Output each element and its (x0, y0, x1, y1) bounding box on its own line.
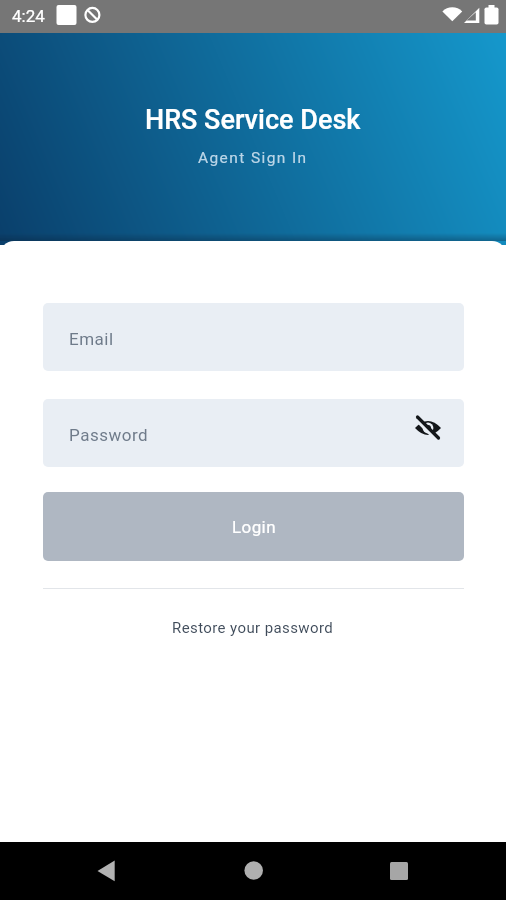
button[interactable]: Password (43, 399, 464, 467)
staticText: 4:24 (12, 6, 45, 26)
button[interactable]: Restore your password (172, 619, 334, 637)
staticText: Agent Sign In (198, 149, 308, 167)
button[interactable] (66, 842, 146, 900)
button[interactable] (359, 842, 439, 900)
button[interactable] (414, 414, 442, 442)
button[interactable]: Login (43, 492, 464, 561)
staticText: Restore your password (172, 619, 334, 637)
button[interactable]: Email (43, 303, 464, 371)
staticText: Login (232, 517, 276, 537)
staticText: Email (69, 329, 114, 349)
staticText: HRS Service Desk (145, 104, 361, 136)
button[interactable] (213, 842, 293, 900)
staticText: Password (69, 425, 149, 445)
